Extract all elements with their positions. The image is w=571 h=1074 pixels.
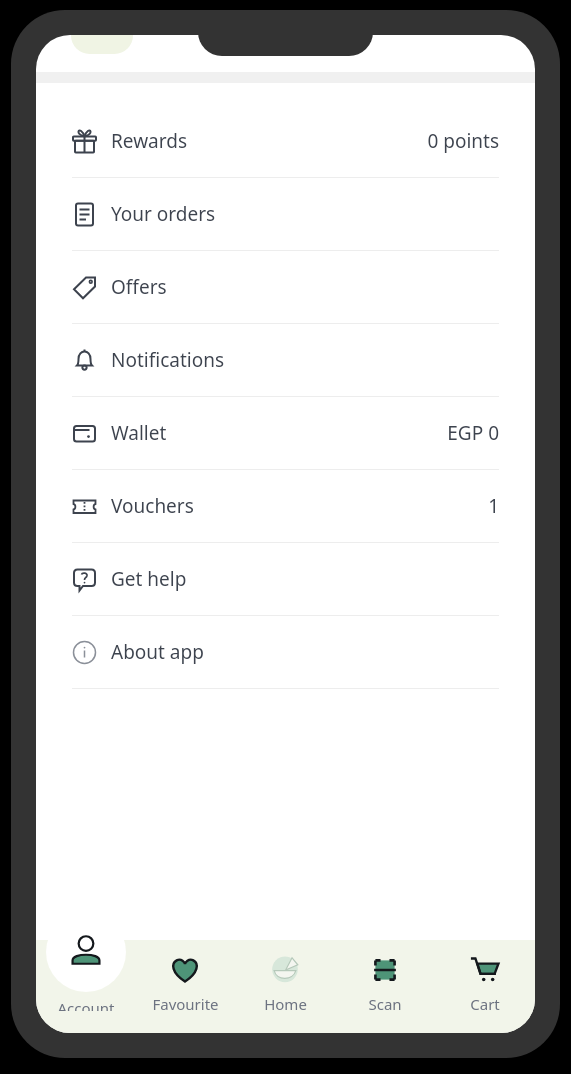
button[interactable]: Your orders [36, 178, 535, 250]
staticText: Notifications [111, 347, 225, 373]
staticText: Your orders [111, 201, 216, 227]
staticText: Favourite [152, 994, 219, 1014]
button[interactable]: About app [36, 616, 535, 688]
button[interactable]: Account [36, 940, 135, 1033]
staticText: Home [264, 994, 307, 1014]
staticText: Rewards [111, 128, 188, 154]
staticText: Vouchers [111, 493, 194, 519]
staticText: Offers [111, 274, 167, 300]
button[interactable]: Rewards [36, 105, 535, 177]
button[interactable]: Notifications [36, 324, 535, 396]
staticText: Wallet [111, 420, 167, 446]
button[interactable]: Scan [335, 940, 435, 1033]
staticText: 0 points [427, 128, 499, 154]
button[interactable]: Home [235, 940, 335, 1033]
button[interactable]: Favourite [135, 940, 235, 1033]
staticText: Account [57, 998, 115, 1011]
staticText: EGP 0 [447, 420, 499, 446]
staticText: About app [111, 639, 204, 665]
button[interactable]: Offers [36, 251, 535, 323]
button[interactable]: Get help [36, 543, 535, 615]
button[interactable]: Vouchers [36, 470, 535, 542]
button[interactable]: Wallet [36, 397, 535, 469]
button[interactable]: Settings [493, 35, 519, 47]
button[interactable]: Cart [435, 940, 535, 1033]
staticText: Get help [111, 566, 187, 592]
staticText: Scan [368, 994, 402, 1014]
staticText: 1 [488, 493, 499, 519]
staticText: Cart [470, 994, 500, 1014]
